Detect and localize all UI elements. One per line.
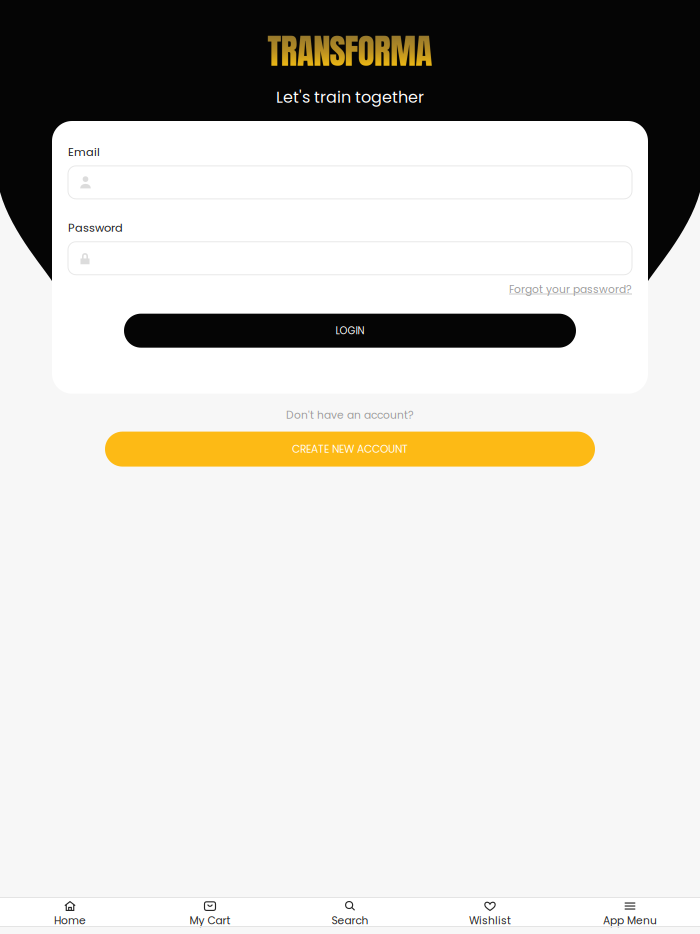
staticText: Forgot your password? <box>509 282 632 297</box>
staticText: Wishlist <box>469 913 511 928</box>
button[interactable]: Home <box>0 897 140 927</box>
staticText: Email <box>68 144 100 160</box>
button[interactable]: App Menu <box>560 897 700 927</box>
button[interactable]: Forgot your password? <box>509 282 632 297</box>
staticText: CREATE NEW ACCOUNT <box>292 442 408 456</box>
button[interactable]: CREATE NEW ACCOUNT <box>105 432 595 467</box>
staticText: My Cart <box>189 913 230 928</box>
staticText: Don't have an account? <box>286 408 414 423</box>
staticText: App Menu <box>603 913 657 928</box>
button[interactable]: Wishlist <box>420 897 560 927</box>
staticText: Home <box>54 913 86 928</box>
button[interactable]: LOGIN <box>124 314 576 348</box>
staticText: Password <box>68 220 123 236</box>
button[interactable]: My Cart <box>140 897 280 927</box>
staticText: Let's train together <box>276 86 424 108</box>
staticText: LOGIN <box>335 324 364 338</box>
staticText: Search <box>331 913 368 928</box>
button[interactable]: Search <box>280 897 420 927</box>
